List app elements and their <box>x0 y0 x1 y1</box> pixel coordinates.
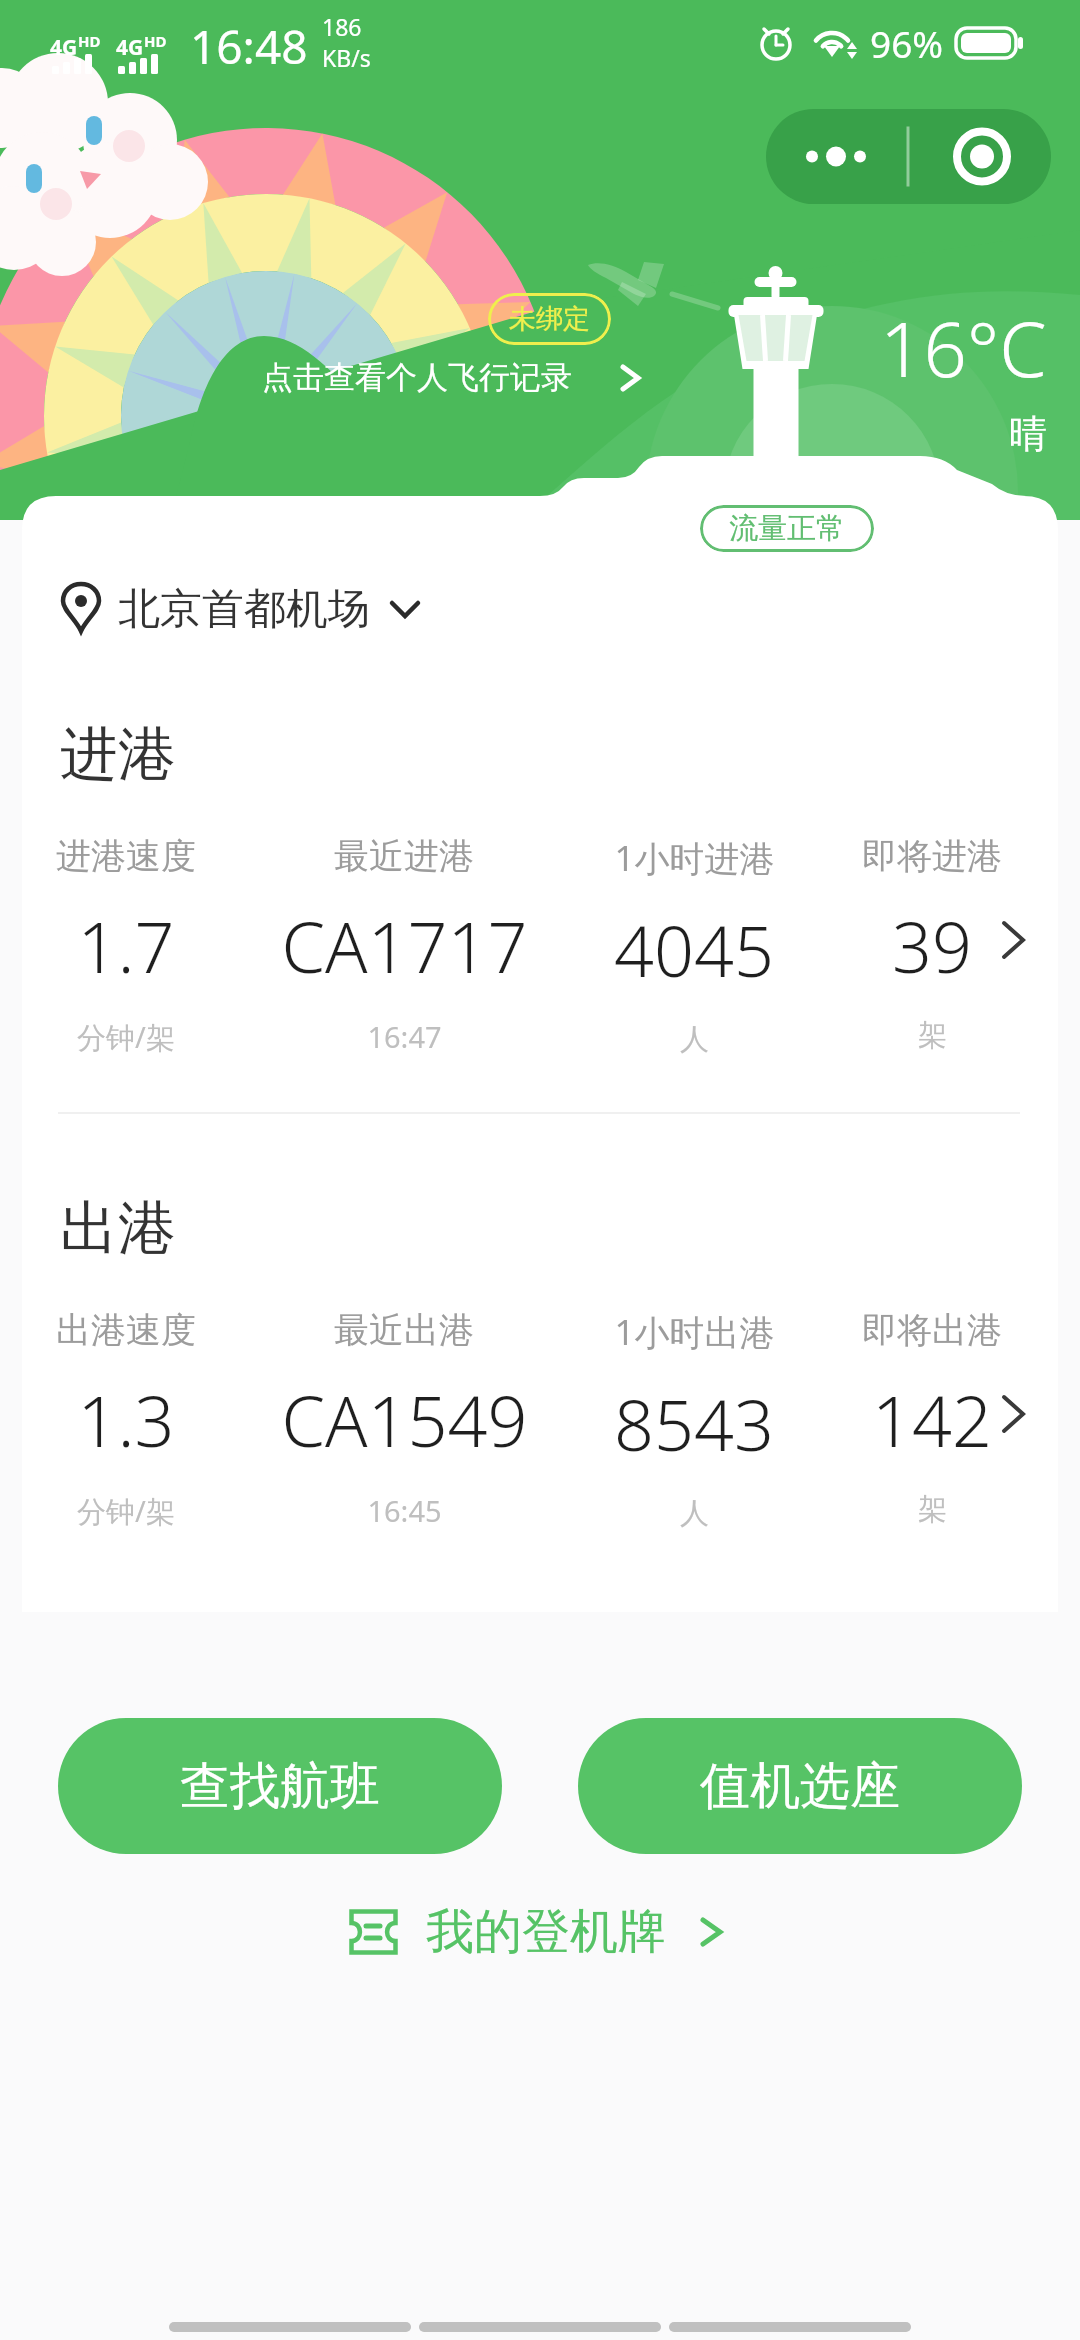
staticText: 16:45 <box>367 1491 442 1530</box>
staticText: 我的登机牌 <box>426 1902 666 1962</box>
staticText: 出港 <box>60 1192 176 1265</box>
button[interactable]: 最近进港 <box>234 834 574 1056</box>
staticText: 4G <box>50 33 78 62</box>
button[interactable]: 即将出港 <box>762 1308 1080 1528</box>
staticText: 即将进港 <box>862 834 1002 878</box>
button[interactable]: 值机选座 <box>578 1718 1022 1854</box>
staticText: 16:48 <box>190 15 308 78</box>
staticText: 186 <box>322 11 362 42</box>
staticText: 分钟/架 <box>77 1491 175 1531</box>
staticText: 1.7 <box>77 898 175 993</box>
button[interactable]: 最近出港 <box>234 1308 574 1530</box>
staticText: HD <box>144 31 167 51</box>
button[interactable]: 1小时进港 <box>524 834 864 1058</box>
staticText: 1小时出港 <box>614 1308 775 1356</box>
staticText: HD <box>78 31 101 51</box>
button[interactable]: 我的登机牌 <box>0 1896 1080 1968</box>
staticText: 人 <box>680 1495 709 1532</box>
staticText: 点击查看个人飞行记录 <box>262 358 572 397</box>
staticText: 8543 <box>614 1376 774 1471</box>
staticText: 查找航班 <box>180 1755 380 1818</box>
staticText: 架 <box>918 1017 947 1054</box>
staticText: 流量正常 <box>729 510 845 547</box>
button[interactable]: More options and close <box>766 109 1051 204</box>
button[interactable]: 出港速度 <box>0 1308 296 1531</box>
staticText: 值机选座 <box>700 1755 900 1818</box>
staticText: 北京首都机场 <box>118 583 370 636</box>
staticText: 96% <box>870 18 944 68</box>
staticText: 16°C <box>880 296 1047 400</box>
button[interactable]: 点击查看个人飞行记录 <box>262 358 648 397</box>
staticText: 最近进港 <box>334 834 474 878</box>
staticText: 晴 <box>1009 410 1047 458</box>
button[interactable]: 未绑定 <box>488 293 611 345</box>
staticText: 进港速度 <box>56 834 196 878</box>
staticText: 4G <box>116 33 144 62</box>
staticText: 架 <box>918 1491 947 1528</box>
button[interactable]: 流量正常 <box>700 505 874 552</box>
button[interactable]: 进港速度 <box>0 834 296 1057</box>
staticText: 1小时进港 <box>614 834 775 882</box>
staticText: KB/s <box>322 42 371 73</box>
staticText: 1.3 <box>77 1372 175 1467</box>
button[interactable]: 即将进港 <box>762 834 1080 1054</box>
staticText: 未绑定 <box>509 302 590 336</box>
button[interactable]: 1小时出港 <box>524 1308 864 1532</box>
staticText: 最近出港 <box>334 1308 474 1352</box>
button[interactable]: 北京首都机场 <box>60 580 424 638</box>
staticText: CA1717 <box>281 898 528 993</box>
staticText: 16:47 <box>367 1017 442 1056</box>
staticText: 142 <box>872 1372 992 1467</box>
staticText: 出港速度 <box>56 1308 196 1352</box>
button[interactable]: 查找航班 <box>58 1718 502 1854</box>
staticText: CA1549 <box>281 1372 528 1467</box>
staticText: 进港 <box>60 718 176 791</box>
staticText: 39 <box>892 898 972 993</box>
staticText: 4045 <box>614 902 774 997</box>
staticText: 即将出港 <box>862 1308 1002 1352</box>
staticText: 分钟/架 <box>77 1017 175 1057</box>
staticText: 人 <box>680 1021 709 1058</box>
